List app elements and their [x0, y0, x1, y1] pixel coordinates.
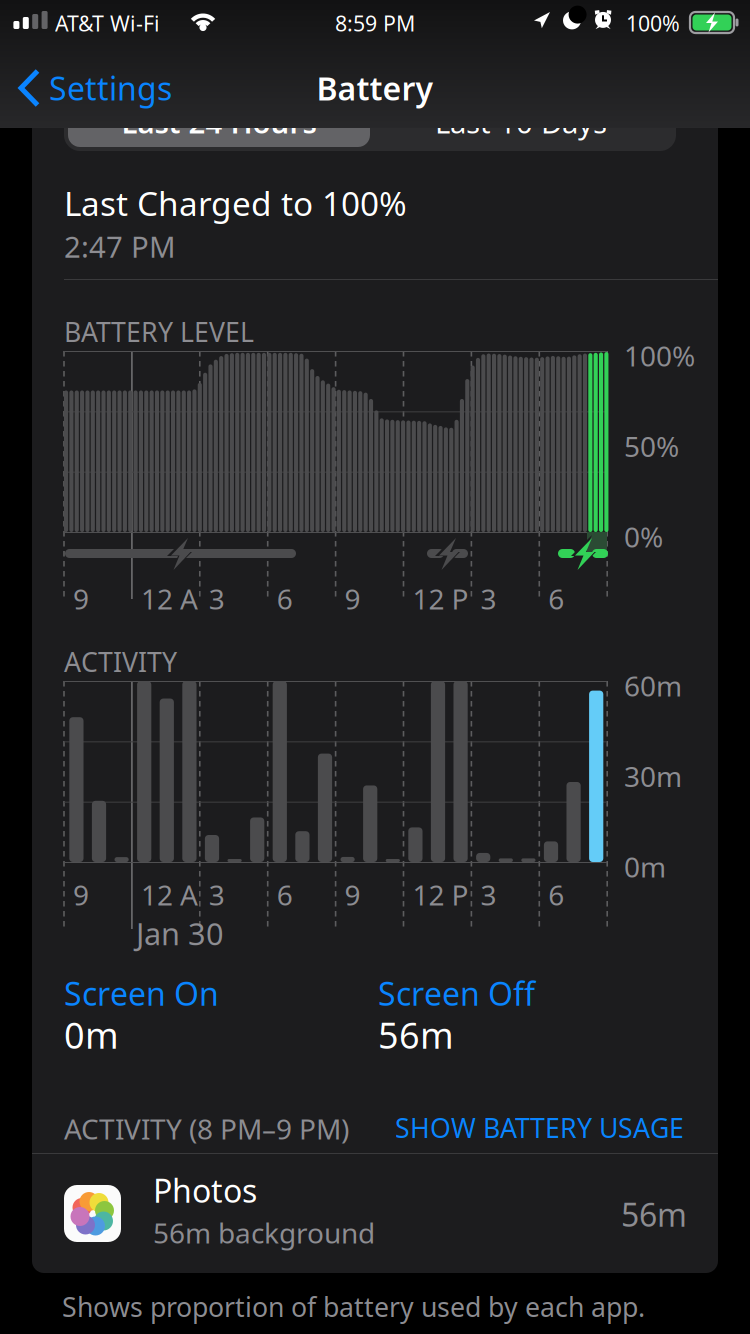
- staticText: 12 A: [141, 580, 198, 617]
- staticText: Screen Off: [378, 972, 535, 1014]
- staticText: 100%: [624, 337, 695, 374]
- staticText: 3: [209, 580, 225, 617]
- staticText: 100%: [626, 9, 680, 37]
- staticText: ACTIVITY (8 PM–9 PM): [64, 1110, 349, 1147]
- button[interactable]: Photos: [0, 0, 750, 1334]
- staticText: Last 24 Hours: [121, 102, 316, 141]
- staticText: 56m: [621, 1193, 687, 1235]
- staticText: 56m: [378, 1011, 454, 1059]
- staticText: 12 P: [412, 876, 468, 913]
- staticText: 3: [480, 580, 496, 617]
- staticText: 0%: [624, 518, 663, 555]
- staticText: Photos: [153, 1169, 257, 1211]
- staticText: Screen On: [64, 972, 219, 1014]
- staticText: 6: [548, 580, 564, 617]
- staticText: BATTERY LEVEL: [64, 314, 254, 349]
- staticText: AT&T Wi-Fi: [55, 9, 160, 37]
- staticText: 6: [277, 876, 293, 913]
- staticText: 9: [73, 876, 89, 913]
- staticText: 3: [209, 876, 225, 913]
- staticText: 30m: [624, 757, 682, 795]
- staticText: ACTIVITY: [64, 644, 177, 679]
- staticText: 3: [480, 876, 496, 913]
- staticText: 8:59 PM: [335, 9, 415, 37]
- staticText: 60m: [624, 667, 682, 704]
- staticText: Shows proportion of battery used by each…: [62, 1289, 645, 1324]
- staticText: Last 10 Days: [435, 102, 607, 141]
- button[interactable]: Last 10 Days: [370, 97, 672, 147]
- staticText: SHOW BATTERY USAGE: [395, 1110, 684, 1145]
- button[interactable]: SHOW BATTERY USAGE: [0, 0, 750, 1334]
- staticText: Battery: [316, 67, 433, 109]
- staticText: Jan 30: [136, 913, 224, 954]
- staticText: 12 P: [412, 580, 468, 617]
- staticText: 9: [73, 580, 89, 617]
- staticText: 12 A: [141, 876, 198, 913]
- staticText: 0m: [64, 1011, 119, 1059]
- staticText: 0m: [624, 848, 666, 885]
- staticText: Settings: [49, 67, 172, 109]
- staticText: 56m background: [153, 1214, 375, 1251]
- button[interactable]: Settings: [0, 53, 172, 123]
- staticText: 50%: [624, 427, 679, 465]
- staticText: 9: [345, 580, 361, 617]
- button[interactable]: Last 24 Hours: [68, 97, 370, 147]
- staticText: 2:47 PM: [64, 227, 176, 266]
- staticText: 6: [277, 580, 293, 617]
- staticText: Last Charged to 100%: [64, 181, 407, 225]
- staticText: 9: [345, 876, 361, 913]
- staticText: 6: [548, 876, 564, 913]
